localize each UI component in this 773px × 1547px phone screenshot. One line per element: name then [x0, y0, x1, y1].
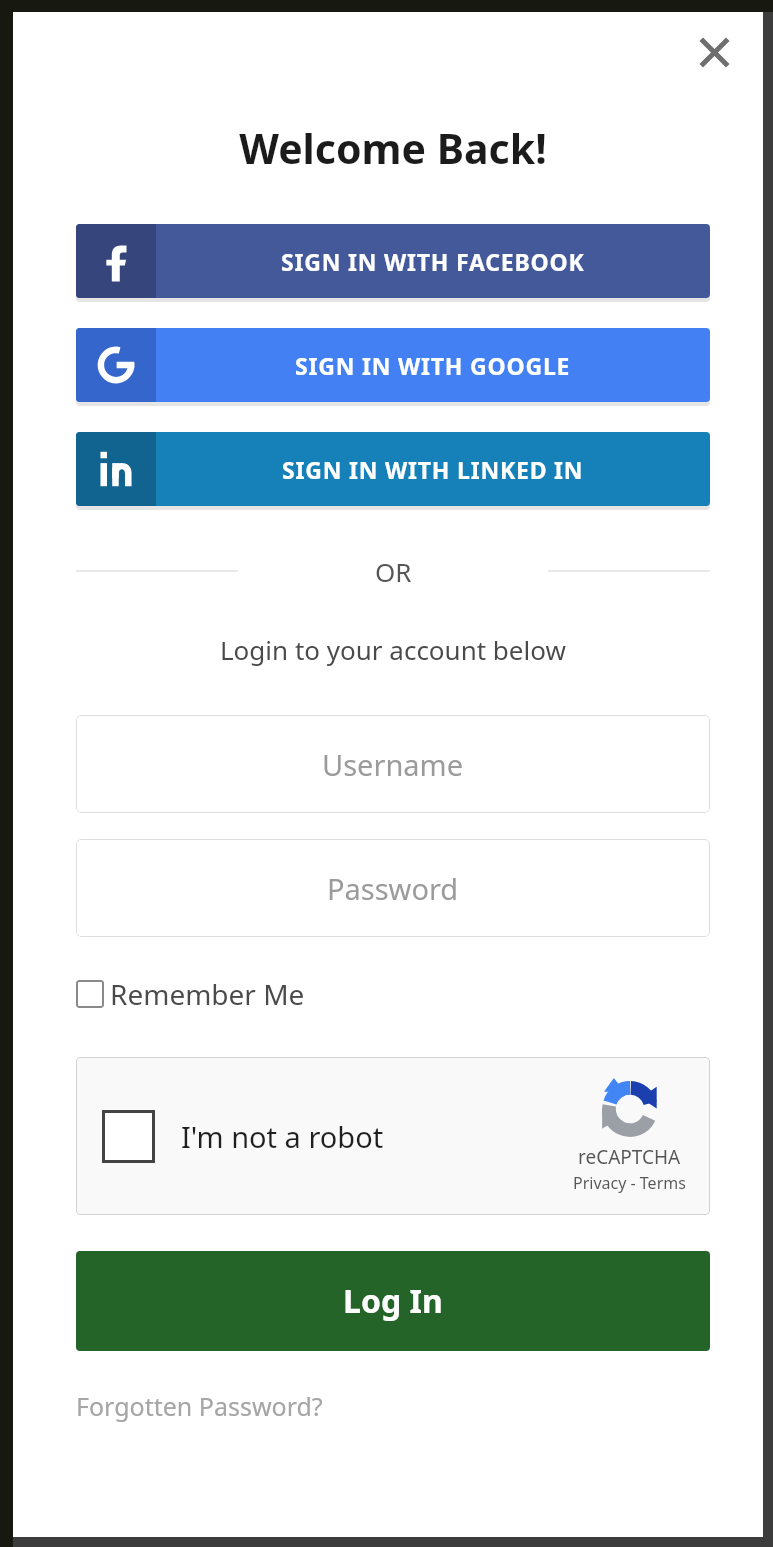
staticText: Log In [343, 1279, 443, 1323]
staticText: Password [327, 869, 459, 908]
button[interactable]: SIGN IN WITH FACEBOOK [76, 224, 710, 298]
staticText: SIGN IN WITH GOOGLE [295, 350, 571, 381]
button[interactable]: Forgotten Password? [76, 1389, 323, 1423]
button[interactable]: Log In [76, 1251, 710, 1351]
staticText: Remember Me [110, 975, 305, 1013]
button[interactable]: Username [76, 715, 710, 813]
staticText: SIGN IN WITH FACEBOOK [281, 246, 585, 277]
button[interactable]: SIGN IN WITH GOOGLE [76, 328, 710, 402]
button[interactable]: Close [691, 29, 737, 75]
staticText: Username [322, 745, 464, 784]
button[interactable]: Remember Me [76, 975, 305, 1013]
button[interactable]: SIGN IN WITH LINKED IN [76, 432, 710, 506]
staticText: Login to your account below [220, 632, 566, 667]
staticText: reCAPTCHA [578, 1144, 681, 1170]
staticText: Forgotten Password? [76, 1389, 323, 1423]
button[interactable]: Password [76, 839, 710, 937]
staticText: Privacy - Terms [573, 1172, 686, 1194]
staticText: I'm not a robot [181, 1117, 384, 1156]
staticText: Welcome Back! [239, 120, 547, 176]
button[interactable]: I'm not a robot [102, 1110, 155, 1163]
staticText: OR [375, 554, 412, 588]
staticText: SIGN IN WITH LINKED IN [282, 454, 584, 485]
